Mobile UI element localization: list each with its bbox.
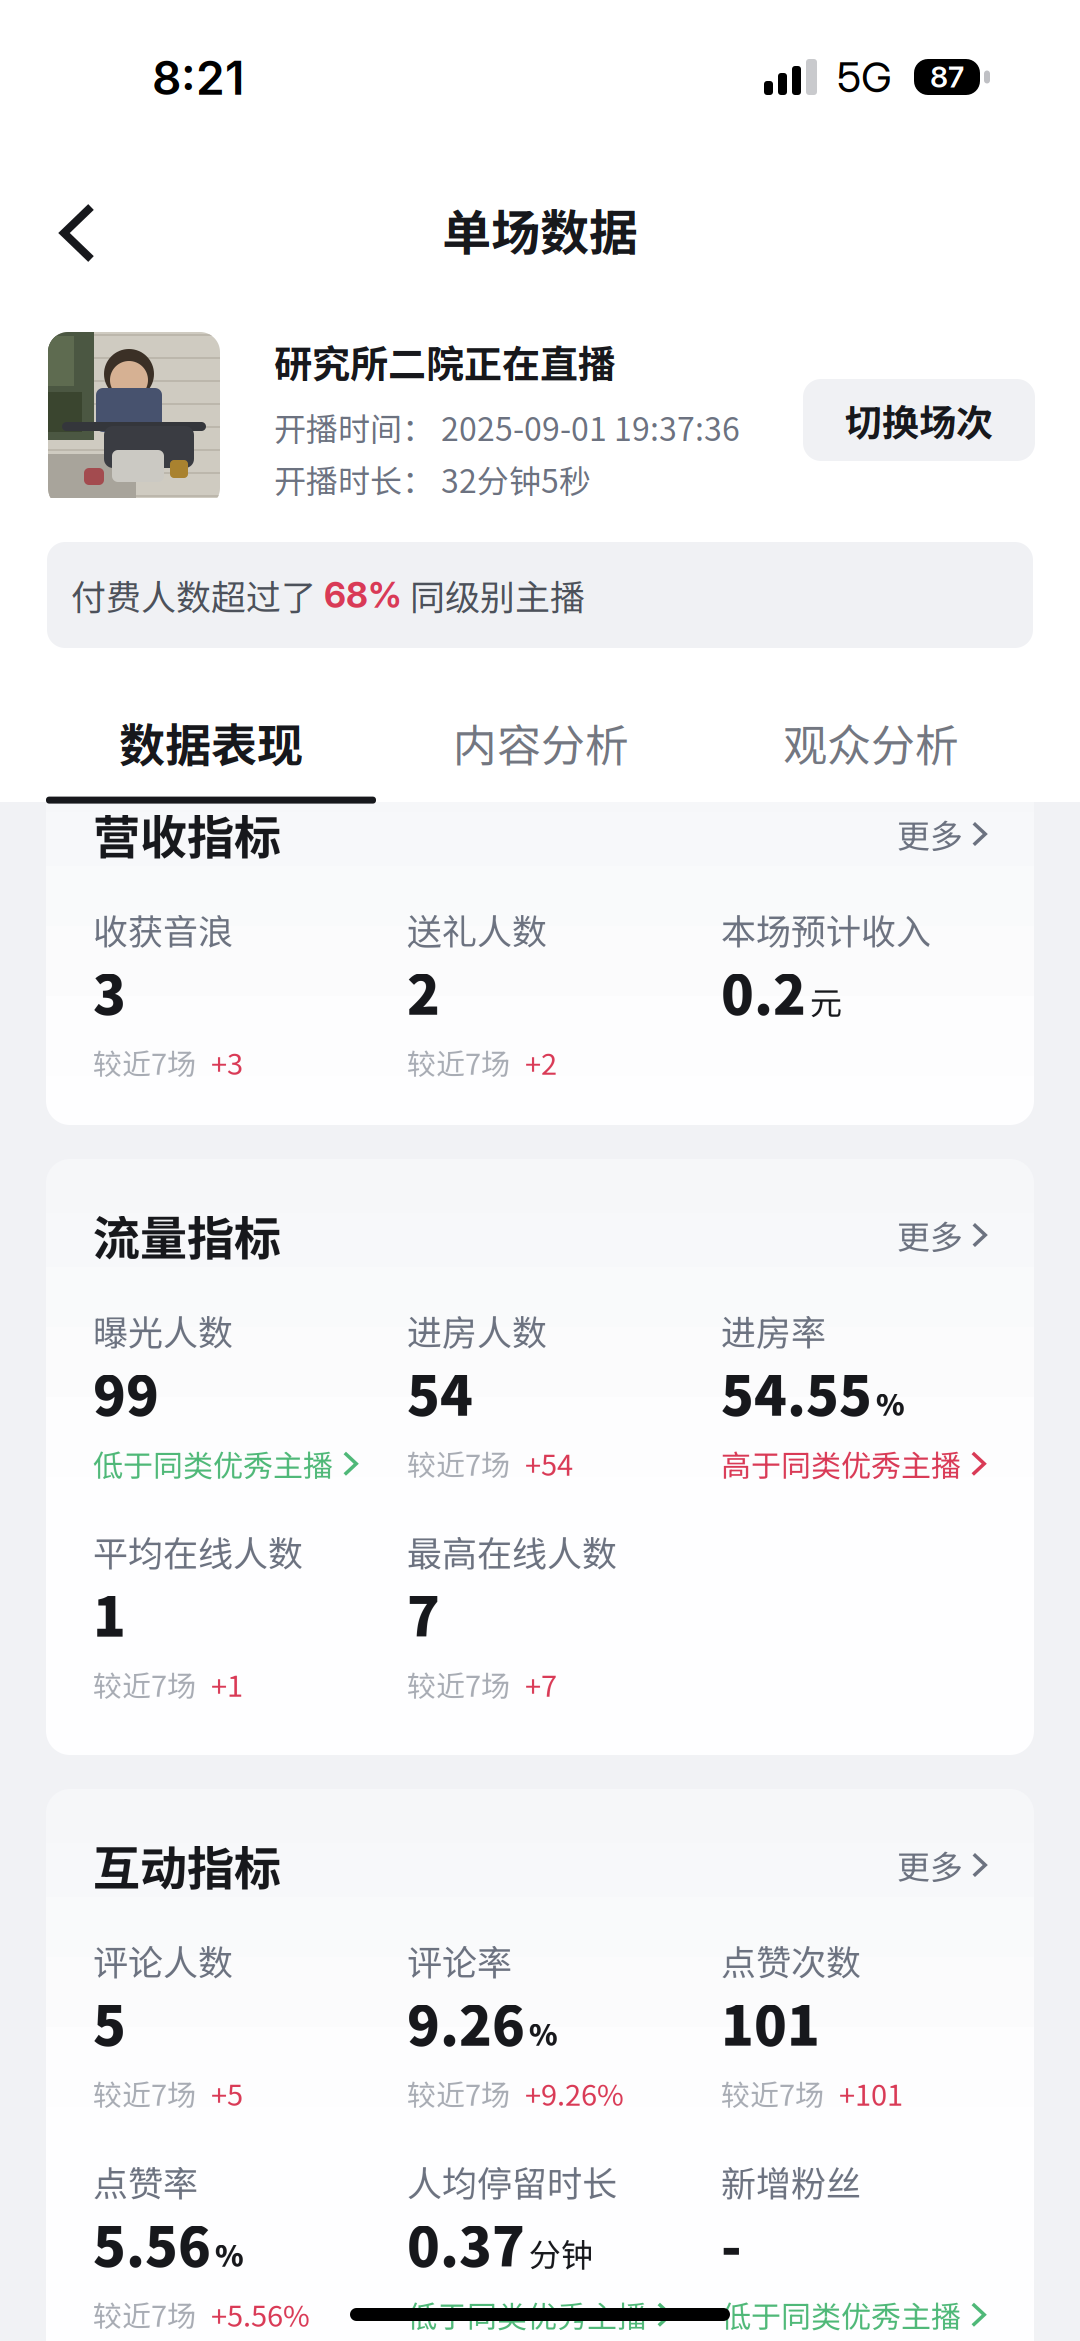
staticText: 数据表现 [119, 709, 303, 776]
staticText: +54 [525, 1442, 573, 1484]
staticText: 较近7场 [93, 1663, 196, 1705]
staticText: 54.55 [721, 1353, 872, 1431]
staticText: 2 [407, 952, 440, 1030]
staticText: 低于同类优秀主播 [721, 2293, 961, 2336]
staticText: % [876, 1382, 905, 1424]
staticText: 5G [837, 52, 892, 102]
staticText: 评论率 [407, 1935, 512, 1986]
button[interactable]: 数据表现 [46, 648, 376, 804]
button[interactable]: 低于同类优秀主播 [93, 1442, 358, 1485]
staticText: 最高在线人数 [407, 1526, 617, 1577]
staticText: +1 [211, 1663, 243, 1705]
staticText: 评论人数 [93, 1935, 233, 1986]
staticText: 0.37 [407, 2204, 525, 2282]
staticText: 较近7场 [93, 2072, 196, 2114]
staticText: 新增粉丝 [721, 2156, 861, 2207]
staticText: 68% [324, 574, 402, 616]
staticText: 101 [721, 1983, 820, 2061]
staticText: +9.26% [525, 2072, 624, 2114]
staticText: 较近7场 [93, 1041, 196, 1083]
staticText: 99 [93, 1353, 159, 1431]
staticText: 研究所二院正在直播 [274, 334, 616, 389]
staticText: +7 [525, 1663, 557, 1705]
staticText: 曝光人数 [93, 1305, 233, 1356]
staticText: 1 [93, 1574, 126, 1652]
staticText: +101 [839, 2072, 903, 2114]
staticText: +5.56% [211, 2293, 310, 2335]
staticText: 开播时长： 32分钟5秒 [274, 456, 591, 502]
staticText: 较近7场 [93, 2293, 196, 2335]
staticText: 5.56 [93, 2204, 211, 2282]
staticText: 点赞次数 [721, 1935, 861, 1986]
staticText: 较近7场 [407, 1041, 510, 1083]
staticText: 本场预计收入 [721, 904, 931, 955]
button[interactable]: 低于同类优秀主播 [407, 2293, 672, 2336]
staticText: 付费人数超过了 [71, 570, 324, 620]
staticText: 进房率 [721, 1305, 826, 1356]
button[interactable]: 切换场次 [803, 379, 1035, 461]
staticText: 平均在线人数 [93, 1526, 303, 1577]
staticText: 元 [810, 977, 842, 1024]
staticText: 高于同类优秀主播 [721, 1442, 961, 1485]
button[interactable]: 低于同类优秀主播 [721, 2293, 986, 2336]
staticText: 5 [93, 1983, 126, 2061]
staticText: 低于同类优秀主播 [93, 1442, 333, 1485]
staticText: 营收指标 [93, 800, 281, 868]
staticText: 较近7场 [407, 1663, 510, 1705]
staticText: 分钟 [529, 2229, 593, 2276]
button[interactable]: 返回 [34, 182, 121, 284]
staticText: 3 [93, 952, 126, 1030]
button[interactable]: 高于同类优秀主播 [721, 1442, 986, 1485]
staticText: 互动指标 [93, 1831, 281, 1899]
staticText: 更多 [897, 810, 963, 858]
staticText: 同级别主播 [402, 570, 585, 620]
button[interactable]: 更多 [897, 810, 987, 858]
staticText: 较近7场 [721, 2072, 824, 2114]
button[interactable]: 更多 [897, 1211, 987, 1259]
staticText: 87 [930, 59, 964, 95]
staticText: 0.2 [721, 952, 806, 1030]
staticText: 单场数据 [442, 194, 638, 265]
staticText: 更多 [897, 1211, 963, 1259]
button[interactable]: 内容分析 [376, 649, 706, 802]
staticText: 内容分析 [453, 710, 629, 774]
staticText: 点赞率 [93, 2156, 198, 2207]
staticText: - [721, 2204, 742, 2282]
staticText: 更多 [897, 1841, 963, 1889]
staticText: 观众分析 [783, 710, 959, 774]
staticText: 8:21 [152, 50, 244, 106]
button[interactable]: 观众分析 [706, 649, 1036, 802]
staticText: 流量指标 [93, 1201, 281, 1269]
staticText: +3 [211, 1041, 243, 1083]
staticText: 低于同类优秀主播 [407, 2293, 647, 2336]
staticText: 较近7场 [407, 1442, 510, 1484]
staticText: 9.26 [407, 1983, 525, 2061]
staticText: 人均停留时长 [407, 2156, 617, 2207]
staticText: 较近7场 [407, 2072, 510, 2114]
staticText: 收获音浪 [93, 904, 233, 955]
staticText: +2 [525, 1041, 557, 1083]
staticText: 7 [407, 1574, 440, 1652]
staticText: 切换场次 [845, 393, 993, 447]
button[interactable]: 更多 [897, 1841, 987, 1889]
staticText: 开播时间： 2025-09-01 19:37:36 [274, 404, 740, 450]
staticText: 进房人数 [407, 1305, 547, 1356]
staticText: +5 [211, 2072, 243, 2114]
staticText: 54 [407, 1353, 473, 1431]
staticText: % [529, 2012, 558, 2054]
staticText: 送礼人数 [407, 904, 547, 955]
staticText: % [215, 2233, 244, 2275]
